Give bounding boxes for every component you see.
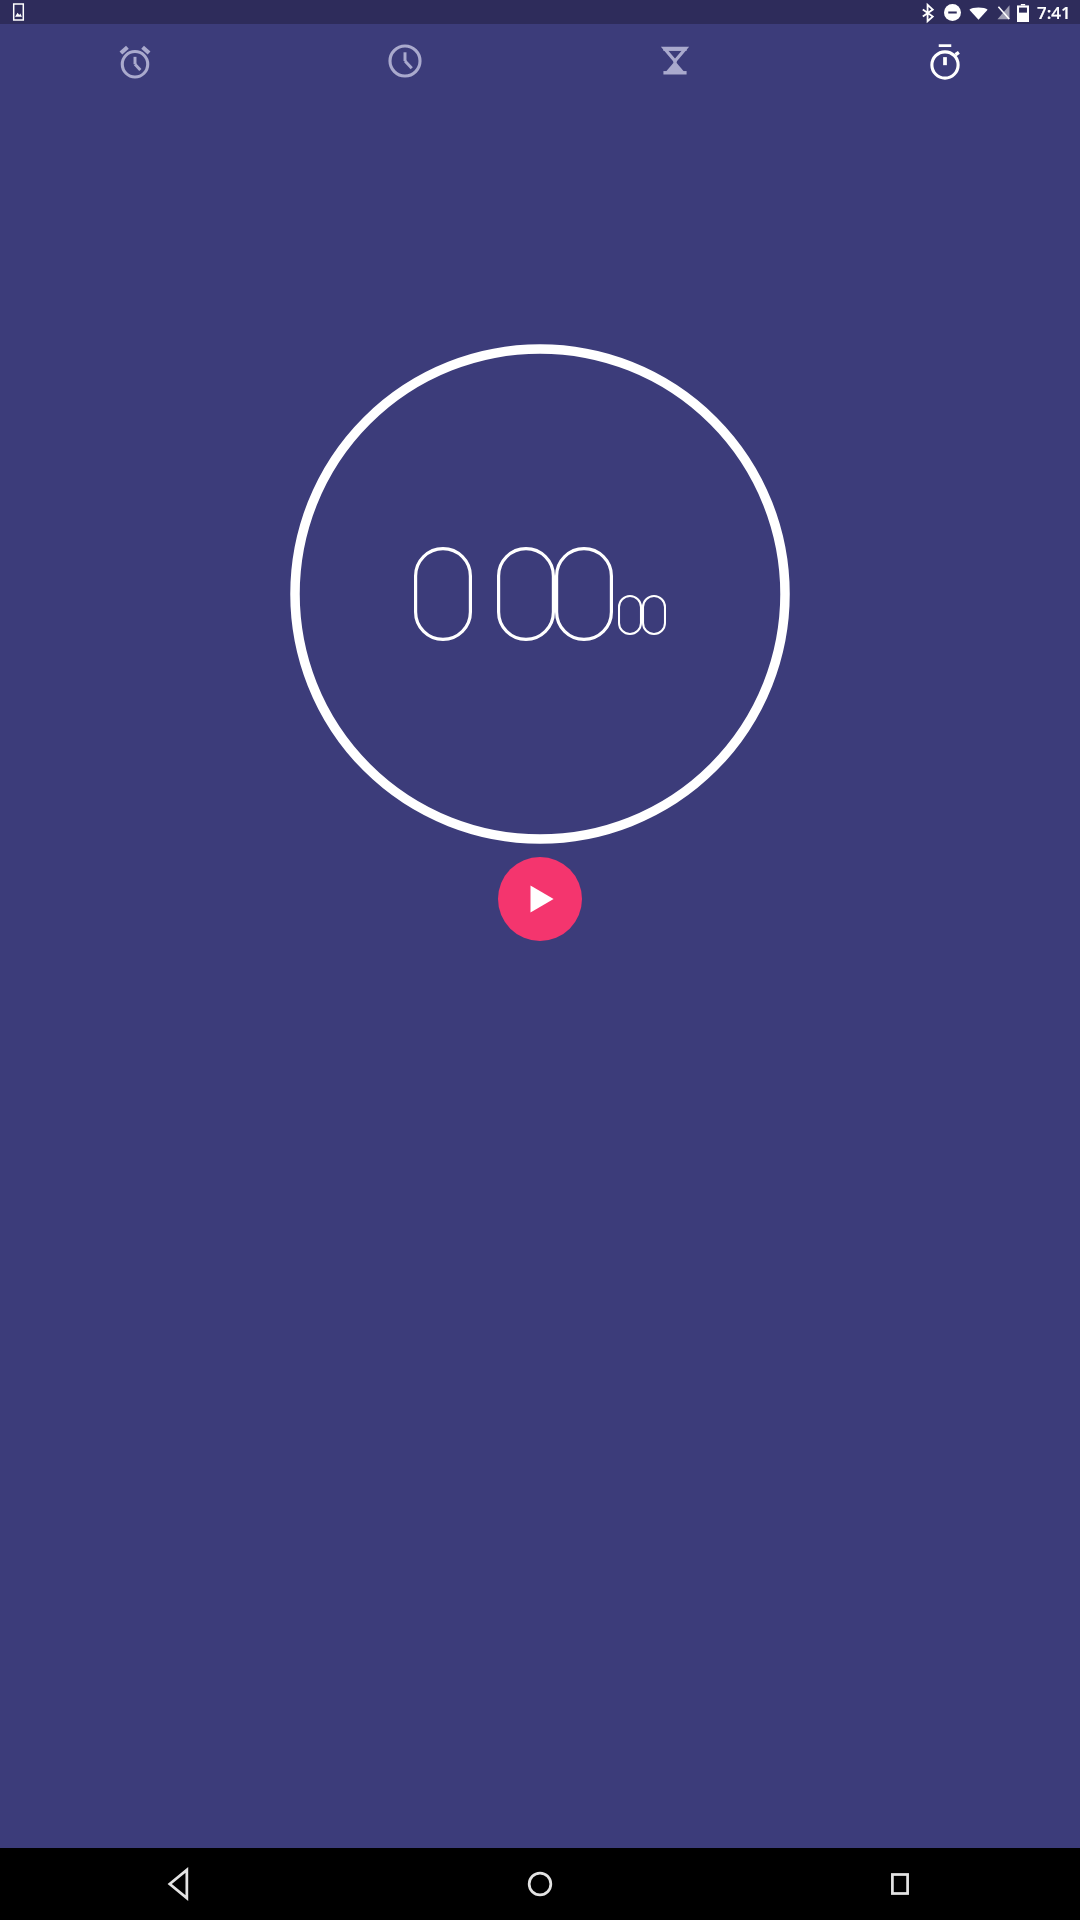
button[interactable]: Alarm (0, 24, 270, 98)
staticText: 7:41 (1037, 1, 1071, 24)
button[interactable]: Recents (720, 1848, 1080, 1920)
button[interactable]: Clock (270, 24, 540, 98)
button[interactable]: Back (0, 1848, 360, 1920)
button[interactable]: Stopwatch (810, 24, 1080, 98)
button[interactable]: Home (360, 1848, 720, 1920)
button[interactable]: Start (498, 857, 582, 941)
button[interactable]: Timer (540, 24, 810, 98)
